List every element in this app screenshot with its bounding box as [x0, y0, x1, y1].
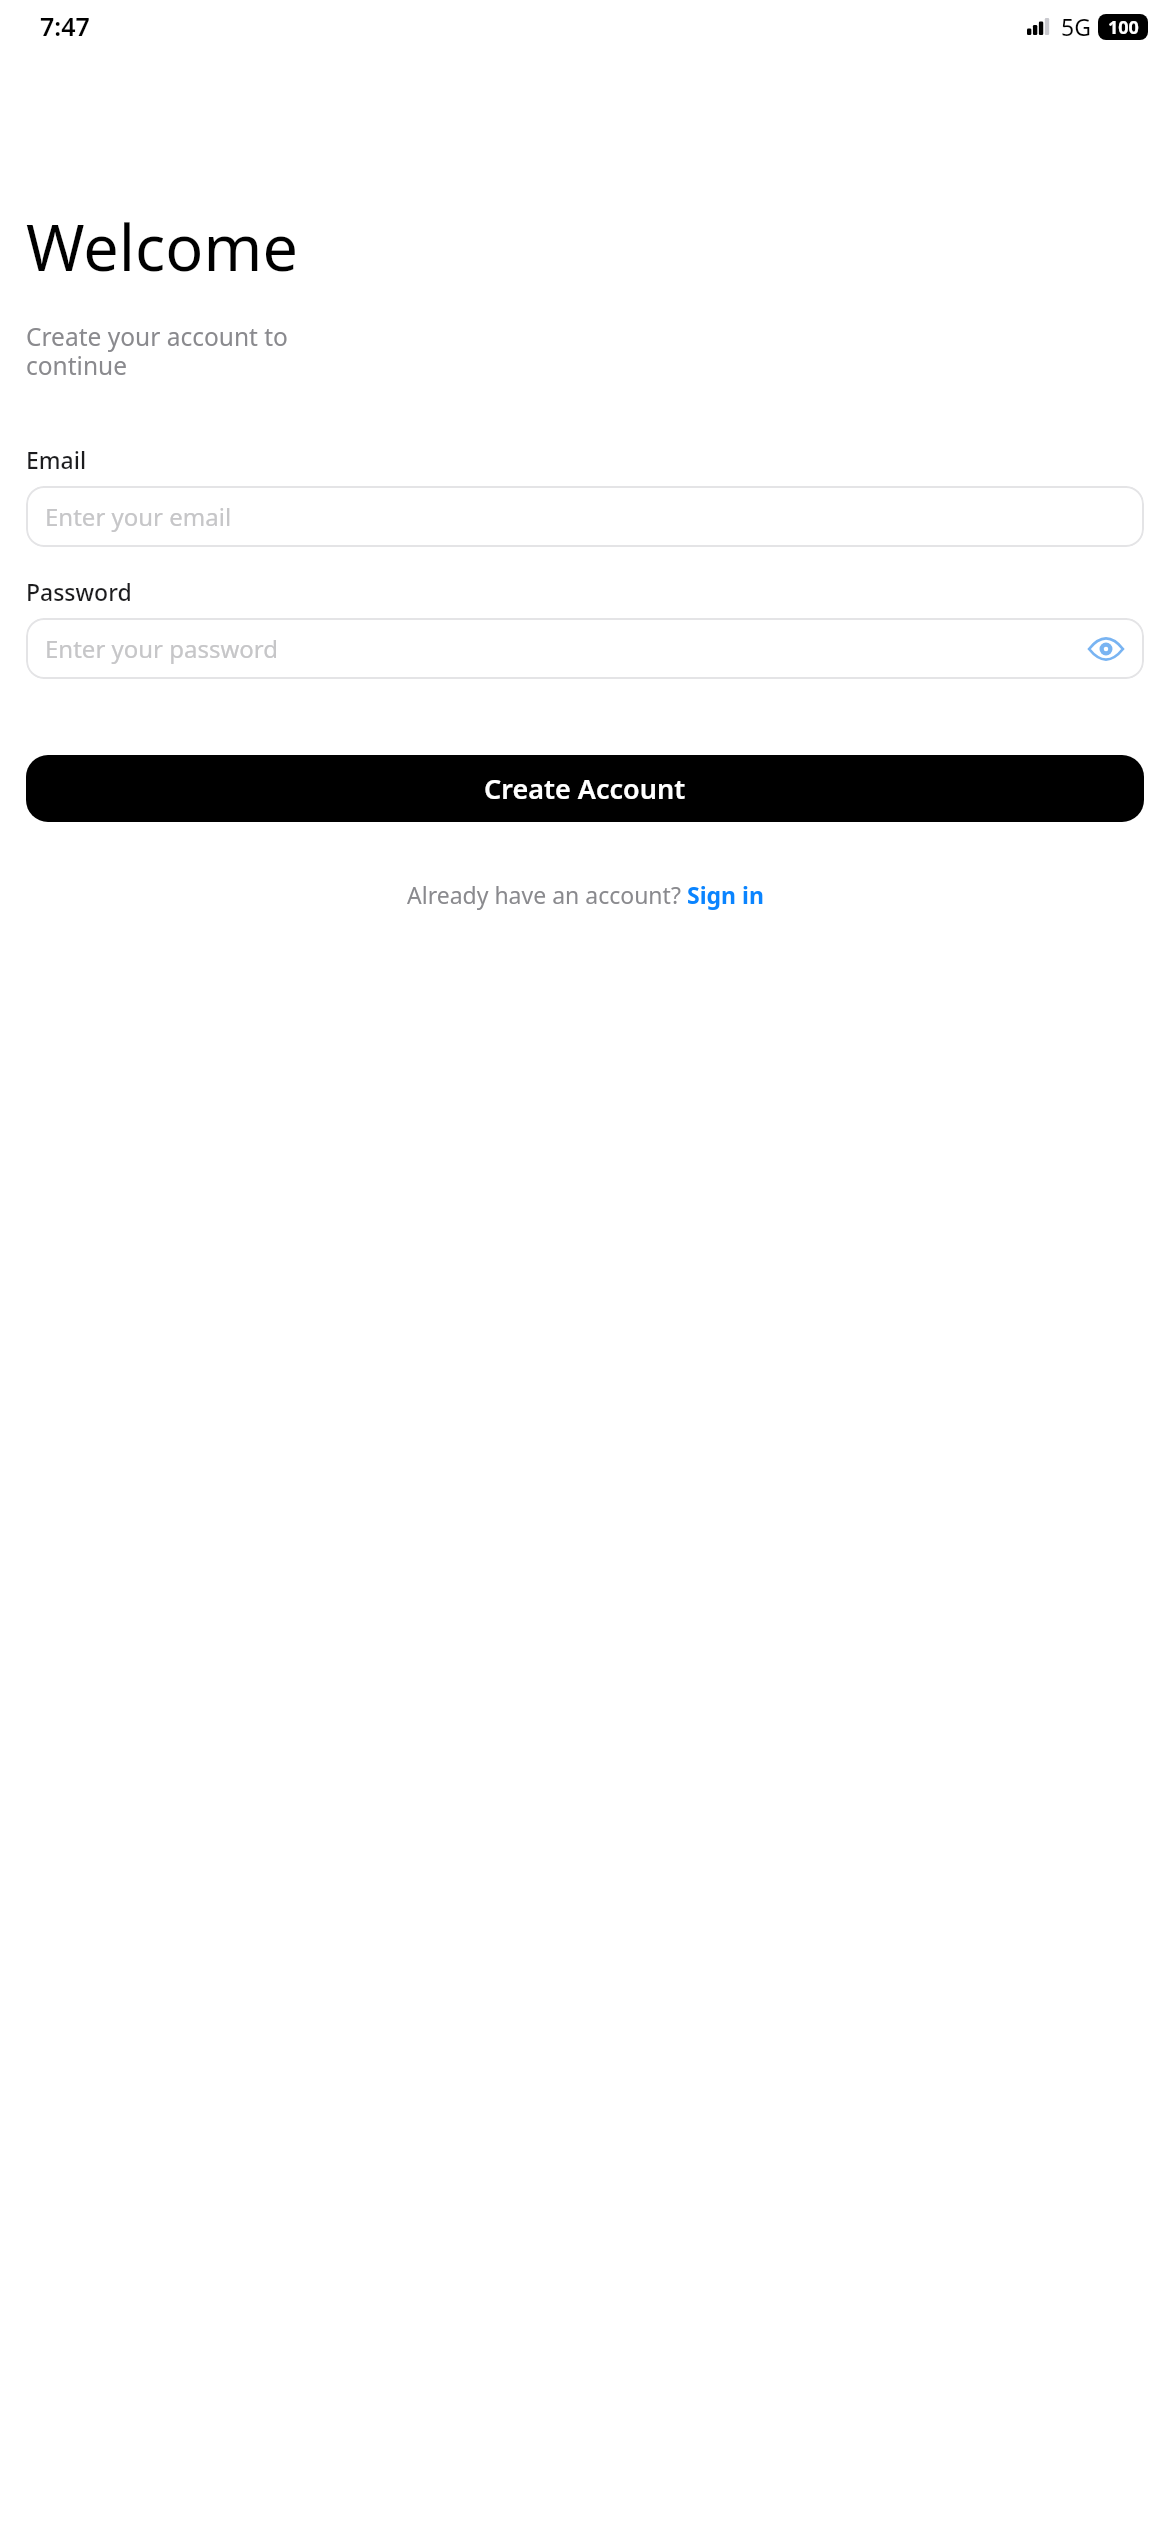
staticText: Enter your password [45, 632, 279, 665]
button[interactable]: Enter your email [26, 486, 1144, 547]
staticText: Sign in [687, 879, 764, 910]
staticText: Password [26, 576, 132, 607]
staticText: Enter your email [45, 500, 232, 533]
staticText: Welcome [26, 204, 298, 290]
button[interactable]: Sign in [687, 879, 764, 910]
staticText: 5G [1061, 11, 1091, 42]
staticText: Already have an account? [407, 879, 687, 910]
staticText: Create Account [484, 770, 686, 807]
staticText: 7:47 [40, 9, 90, 43]
staticText: 100 [1108, 15, 1139, 40]
button[interactable]: Create Account [26, 755, 1144, 822]
staticText: Create your account to continue [26, 320, 288, 382]
button[interactable]: Show password [1086, 629, 1126, 669]
button[interactable]: Enter your password [26, 618, 1144, 679]
staticText: Email [26, 444, 87, 475]
